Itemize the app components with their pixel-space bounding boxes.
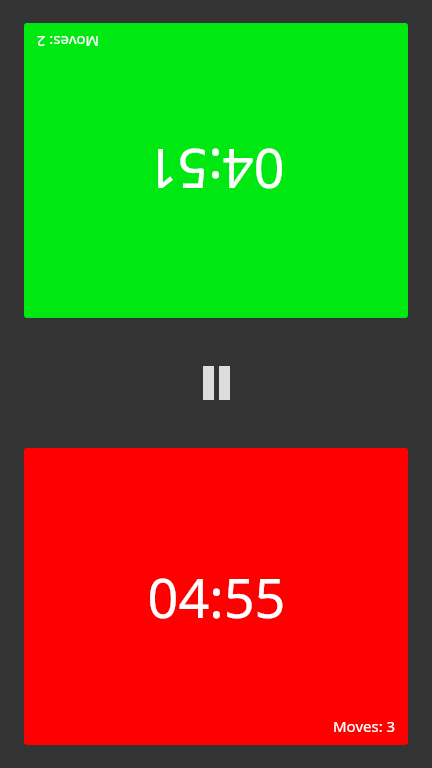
staticText: Moves: 3 — [333, 716, 396, 736]
staticText: Moves: 2 — [36, 32, 99, 52]
button[interactable]: Pause — [188, 359, 244, 407]
button[interactable]: 04:51 — [24, 23, 408, 318]
staticText: 04:55 — [147, 560, 286, 634]
button[interactable]: 04:55 — [24, 448, 408, 745]
staticText: 04:51 — [146, 133, 285, 207]
